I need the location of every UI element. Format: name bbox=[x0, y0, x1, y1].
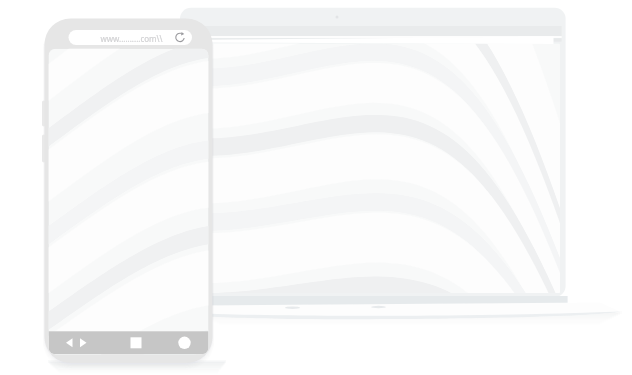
staticText: www..........com\\ bbox=[100, 33, 163, 44]
button[interactable]: www..........com\\ bbox=[69, 30, 132, 41]
